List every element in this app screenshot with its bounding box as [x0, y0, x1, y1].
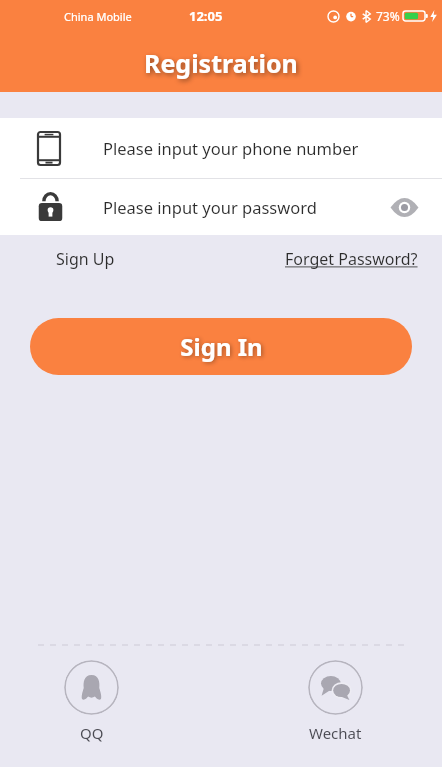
button[interactable]: Show password — [388, 191, 420, 223]
button[interactable]: QQ — [58, 658, 125, 745]
button[interactable]: Forget Password? — [285, 248, 418, 270]
staticText: Please input your password — [103, 196, 317, 218]
button[interactable]: Please input your password — [0, 179, 442, 235]
button[interactable]: Sign Up — [56, 248, 115, 270]
staticText: Sign In — [180, 330, 263, 363]
staticText: Sign Up — [56, 248, 115, 270]
staticText: 12:05 — [189, 7, 223, 25]
staticText: Wechat — [309, 723, 362, 743]
staticText: Forget Password? — [285, 248, 418, 270]
staticText: 73% — [376, 8, 400, 24]
button[interactable]: Wechat — [302, 658, 369, 745]
button[interactable]: Sign In — [30, 318, 412, 375]
staticText: China Mobile — [64, 9, 132, 24]
staticText: Registration — [144, 46, 298, 80]
staticText: Please input your phone number — [103, 137, 359, 159]
button[interactable]: Please input your phone number — [0, 118, 442, 178]
staticText: QQ — [80, 723, 104, 743]
